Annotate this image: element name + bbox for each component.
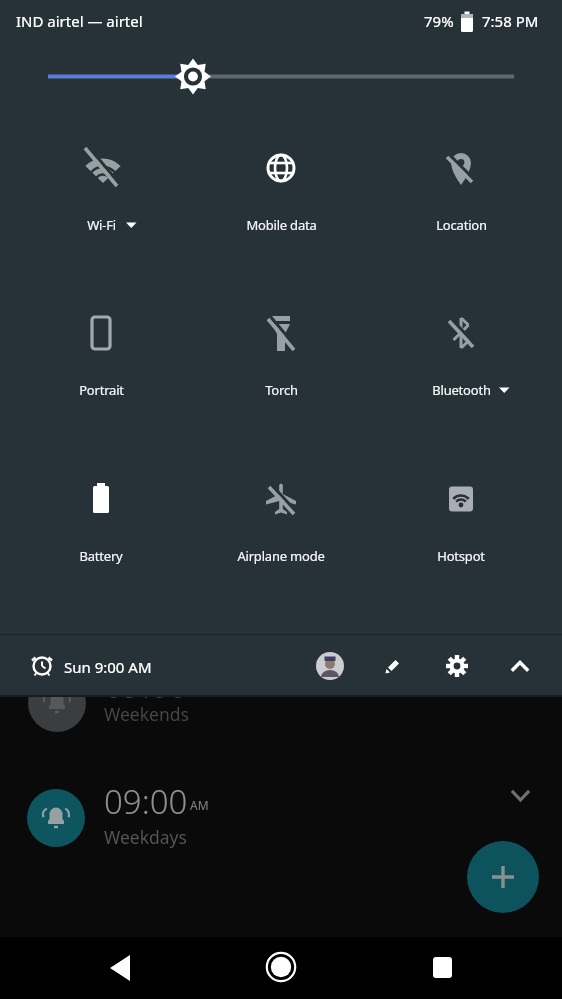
button[interactable]: Sun 9:00 AM — [20, 647, 200, 685]
staticText: Mobile data — [246, 216, 317, 234]
button[interactable] — [504, 650, 536, 682]
button[interactable]: Bluetooth — [371, 303, 551, 405]
staticText: Weekdays — [104, 825, 187, 849]
button[interactable]: Battery — [11, 469, 191, 571]
staticText: Battery — [79, 547, 123, 565]
button[interactable]: 09:00 — [0, 660, 562, 770]
staticText: Airplane mode — [237, 547, 325, 565]
button[interactable] — [100, 948, 140, 988]
button[interactable] — [467, 841, 539, 913]
button[interactable] — [36, 52, 562, 100]
staticText: Sun 9:00 AM — [64, 657, 152, 677]
button[interactable]: Hotspot — [371, 469, 551, 571]
staticText: Bluetooth — [432, 381, 491, 399]
button[interactable]: Wi-Fi — [11, 138, 191, 240]
button[interactable]: Mobile data — [191, 138, 371, 240]
button[interactable]: Portrait — [11, 303, 191, 405]
button[interactable] — [316, 652, 344, 680]
button[interactable]: 09:00 — [0, 760, 562, 870]
button[interactable]: Airplane mode — [191, 469, 371, 571]
button[interactable] — [377, 650, 409, 682]
staticText: Hotspot — [437, 547, 485, 565]
staticText: Weekends — [104, 702, 189, 726]
button[interactable] — [422, 947, 462, 987]
button[interactable]: Torch — [191, 303, 371, 405]
staticText: Location — [436, 216, 487, 234]
staticText: Wi-Fi — [87, 216, 116, 234]
staticText: 09:00 — [104, 663, 188, 708]
button[interactable] — [261, 947, 301, 987]
staticText: AM — [190, 797, 209, 813]
staticText: 7:58 PM — [482, 11, 539, 31]
button[interactable]: Location — [371, 138, 551, 240]
staticText: 09:00 — [104, 779, 188, 824]
staticText: 79% — [424, 11, 454, 31]
staticText: IND airtel — airtel — [16, 11, 143, 31]
staticText: Torch — [265, 381, 298, 399]
staticText: Portrait — [79, 381, 124, 399]
button[interactable] — [441, 650, 473, 682]
